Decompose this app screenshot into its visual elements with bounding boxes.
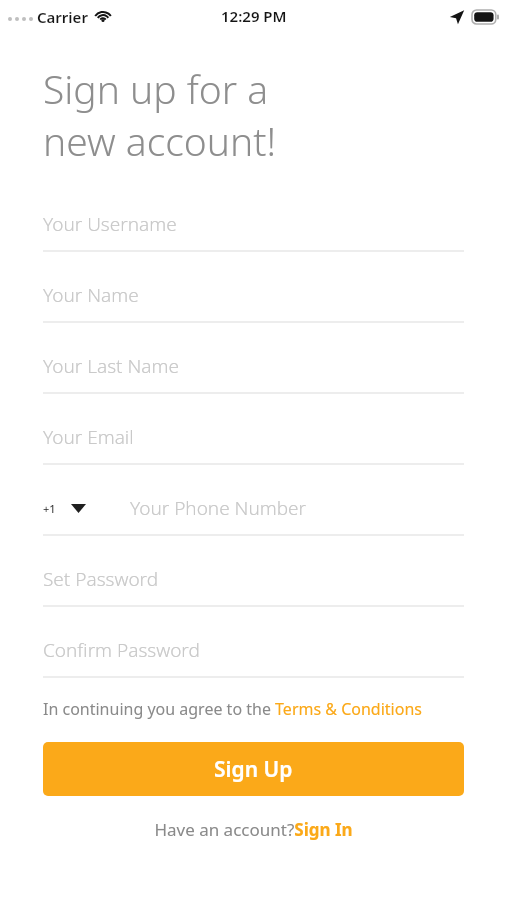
staticText: Sign Up [214,755,293,784]
button[interactable]: In continuing you agree to the Terms & C… [43,698,464,720]
staticText: Carrier [37,7,88,27]
button[interactable]: +1 [43,482,464,536]
staticText: Your Last Name [43,353,179,379]
button[interactable]: Confirm Password [43,624,464,678]
staticText: +1 [43,501,56,516]
button[interactable]: Your Last Name [43,340,464,394]
staticText: Your Email [43,424,134,450]
button[interactable]: Set Password [43,553,464,607]
other: Select country code [69,499,87,517]
staticText: Your Name [43,282,139,308]
staticText: In continuing you agree to the Terms & C… [43,698,422,720]
button[interactable]: Your Email [43,411,464,465]
staticText: 12:29 PM [221,6,287,26]
staticText: Confirm Password [43,637,200,663]
button[interactable]: Your Username [43,198,464,252]
staticText: Have an account?Sign In [154,818,353,841]
staticText: Sign up for a new account! [43,62,277,167]
button[interactable]: Have an account?Sign In [43,818,464,841]
button[interactable]: Sign Up [43,742,464,796]
staticText: Your Phone Number [130,495,307,521]
staticText: Your Username [43,211,177,237]
staticText: Set Password [43,566,159,592]
button[interactable]: Your Name [43,269,464,323]
